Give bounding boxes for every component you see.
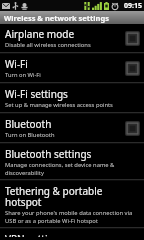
button[interactable]: Tethering & portable hotspot — [0, 181, 144, 227]
button[interactable]: Bluetooth settings — [0, 144, 144, 179]
staticText: Wi-Fi settings — [5, 87, 68, 101]
button[interactable]: Toggle setting — [125, 31, 140, 46]
staticText: Share your phone's mobile data connectio… — [5, 209, 140, 224]
staticText: Bluetooth — [5, 117, 52, 131]
staticText: 09:15 — [124, 1, 142, 11]
staticText: Airplane mode — [5, 27, 75, 41]
button[interactable]: VPN settings — [0, 229, 144, 240]
staticText: Bluetooth settings — [5, 147, 92, 161]
button[interactable]: Toggle setting — [125, 61, 140, 76]
staticText: Wireless & network settings — [4, 13, 109, 23]
staticText: Turn on Wi-Fi — [5, 71, 41, 79]
staticText: VPN settings — [5, 232, 65, 237]
button[interactable]: Wireless & network settings — [0, 11, 144, 24]
button[interactable]: Bluetooth — [0, 114, 144, 142]
staticText: Turn on Bluetooth — [5, 131, 55, 139]
staticText: Disable all wireless connections — [5, 41, 91, 49]
staticText: Tethering & portable hotspot — [5, 184, 140, 209]
button[interactable]: Toggle setting — [125, 121, 140, 136]
staticText: Wi-Fi — [5, 57, 28, 71]
button[interactable]: Wi-Fi — [0, 54, 144, 82]
staticText: Set up & manage wireless access points — [5, 101, 113, 109]
button[interactable]: Wi-Fi settings — [0, 84, 144, 112]
staticText: Manage connections, set device name & di… — [5, 161, 140, 176]
button[interactable]: Airplane mode — [0, 24, 144, 52]
